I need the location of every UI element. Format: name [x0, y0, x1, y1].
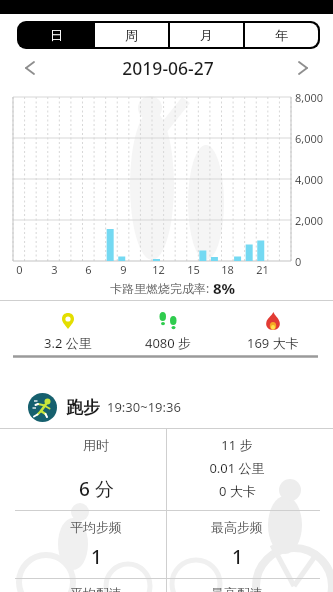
staticText: 169 大卡 — [247, 334, 299, 352]
staticText: 6,000 — [295, 131, 324, 146]
button[interactable]: 年 — [245, 23, 318, 47]
button[interactable]: 日 — [19, 23, 93, 47]
staticText: 8% — [213, 278, 236, 298]
staticText: 21 — [256, 262, 269, 277]
staticText: 1 — [232, 544, 243, 570]
staticText: 卡路里燃烧完成率: — [110, 280, 213, 296]
staticText: 0 — [295, 254, 302, 269]
staticText: 0.01 公里 — [209, 459, 265, 477]
staticText: 最高配速 — [211, 585, 263, 592]
staticText: 平均步频 — [70, 519, 122, 535]
button[interactable]: 周 — [95, 23, 168, 47]
button[interactable]: 月 — [170, 23, 243, 47]
staticText: 用时 — [83, 437, 109, 453]
button[interactable] — [288, 55, 317, 81]
staticText: 2019-06-27 — [122, 56, 214, 80]
staticText: 3 — [51, 262, 58, 277]
staticText: 6 — [85, 262, 92, 277]
staticText: 月 — [200, 27, 213, 43]
staticText: 18 — [221, 262, 234, 277]
staticText: 4,000 — [295, 172, 324, 187]
button[interactable]: 跑步 — [28, 386, 181, 428]
staticText: 15 — [187, 262, 200, 277]
staticText: 3.2 公里 — [44, 334, 92, 352]
staticText: 12 — [152, 262, 165, 277]
staticText: 1 — [91, 544, 102, 570]
staticText: 9 — [120, 262, 127, 277]
button[interactable] — [15, 55, 44, 81]
staticText: 6 分 — [79, 476, 114, 502]
staticText: 年 — [275, 27, 288, 43]
staticText: 0 — [16, 262, 23, 277]
staticText: 2,000 — [295, 213, 324, 228]
staticText: 8,000 — [295, 90, 324, 105]
staticText: 4080 步 — [145, 334, 192, 352]
staticText: 11 步 — [221, 436, 253, 454]
staticText: 周 — [125, 27, 138, 43]
staticText: 平均配速 — [70, 585, 122, 592]
button[interactable]: 3.2 公里 — [13, 303, 123, 355]
staticText: 跑步 — [66, 397, 100, 418]
button[interactable]: 169 大卡 — [218, 303, 328, 355]
staticText: 19:30~19:36 — [107, 398, 181, 416]
staticText: 0 大卡 — [219, 482, 256, 500]
staticText: 最高步频 — [211, 519, 263, 535]
button[interactable]: 4080 步 — [113, 303, 223, 355]
staticText: 日 — [50, 27, 63, 43]
